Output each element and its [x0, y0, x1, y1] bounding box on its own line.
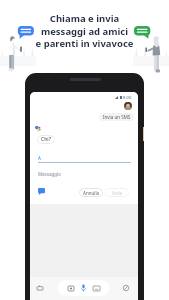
button[interactable]: Invia: [105, 188, 129, 197]
button[interactable]: Explore: [123, 285, 129, 291]
button[interactable]: Keyboard: [37, 285, 43, 291]
staticText: Invia: [112, 190, 123, 196]
staticText: Messaggio: [38, 171, 61, 177]
staticText: Chi?: [41, 136, 51, 143]
button[interactable]: Account: [124, 102, 132, 110]
button[interactable]: Chi?: [37, 135, 55, 144]
button[interactable]: Annulla: [79, 188, 103, 197]
button[interactable]: Keyboard input: [93, 286, 100, 291]
staticText: 8:00: [123, 95, 132, 99]
staticText: A: [38, 155, 41, 161]
staticText: Invia un SMS: [103, 114, 131, 120]
button[interactable]: Lens: [68, 286, 74, 291]
staticText: Annulla: [83, 190, 100, 196]
button[interactable]: Invia un SMS: [99, 113, 134, 121]
button[interactable]: Microphone: [81, 284, 86, 292]
staticText: Chiama e invia messaggi ad amici e paren…: [0, 12, 169, 49]
